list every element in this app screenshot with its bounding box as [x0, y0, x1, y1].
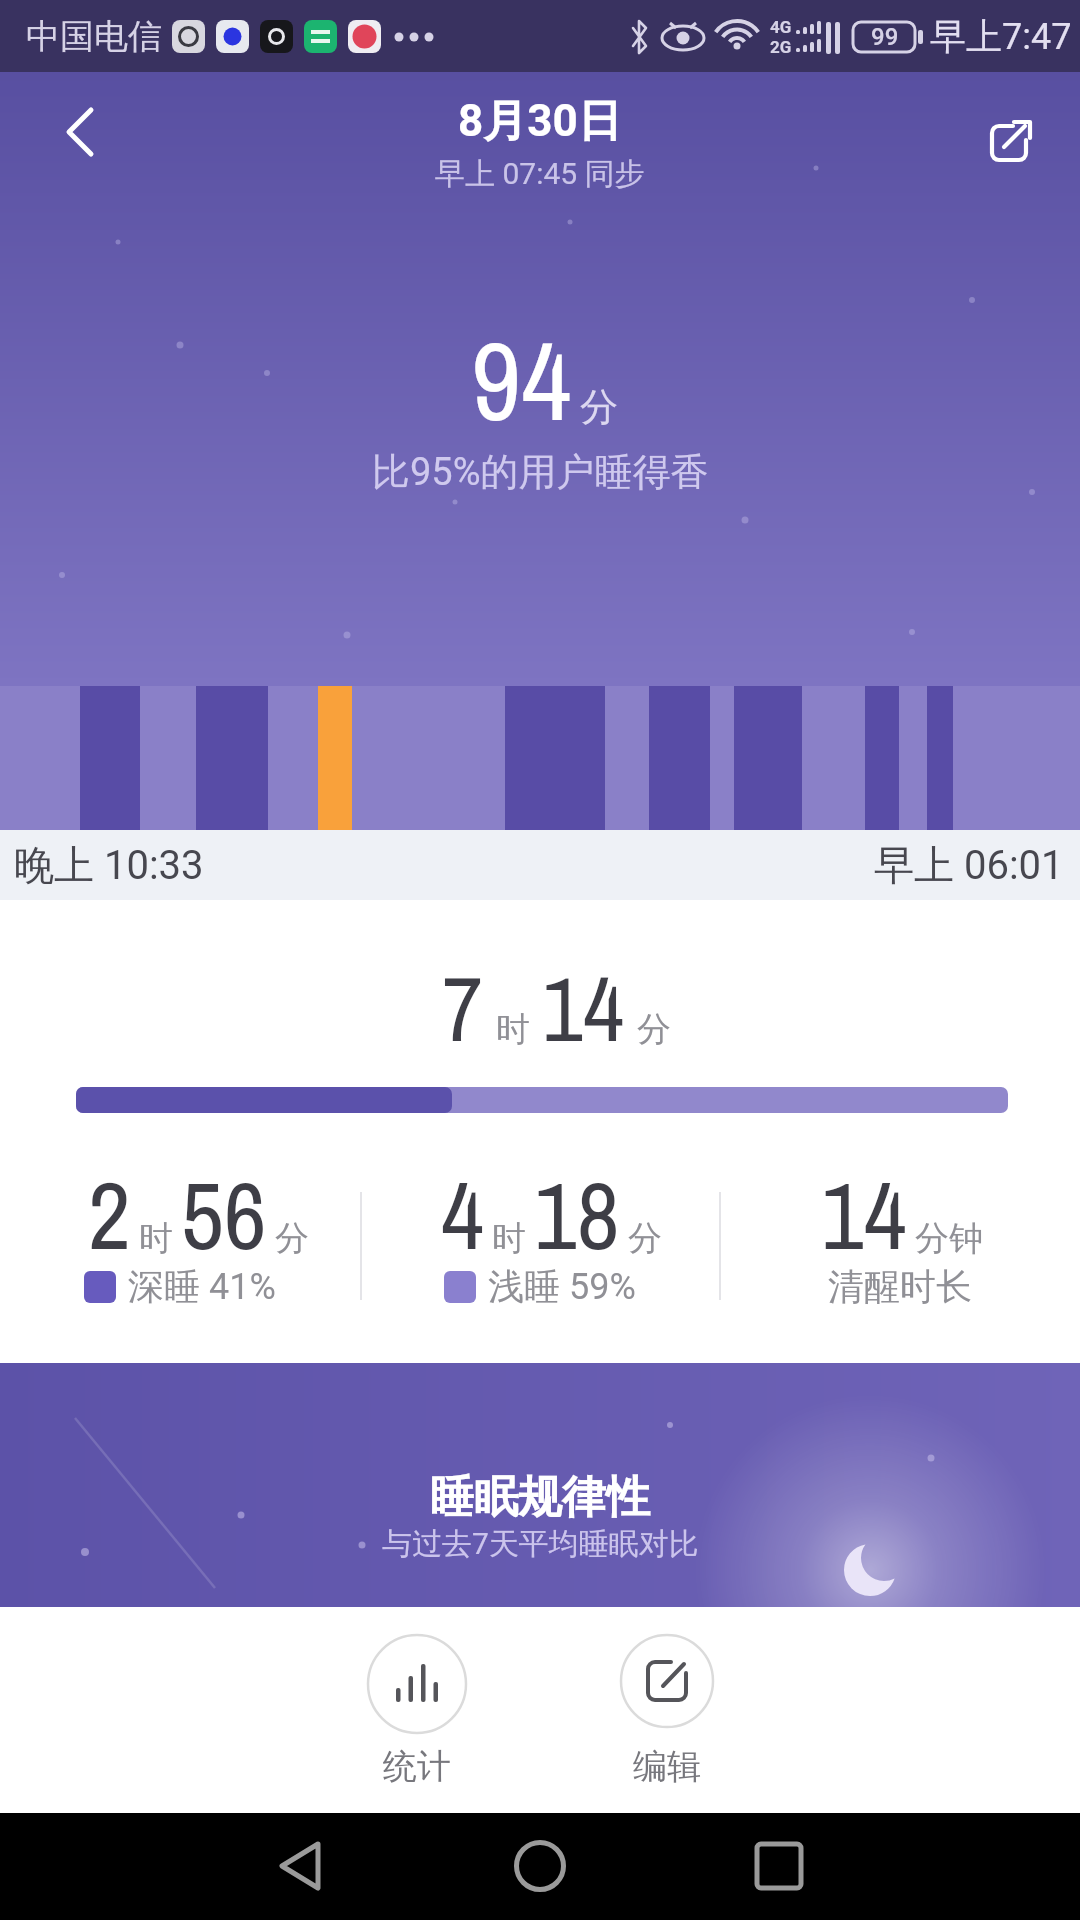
staticText: 8月30日	[458, 94, 622, 149]
staticText: 18	[534, 1152, 620, 1279]
staticText: 早上7:47	[930, 14, 1072, 59]
staticText: 94	[471, 306, 572, 454]
staticText: 分	[628, 1217, 662, 1260]
staticText: 2	[88, 1152, 131, 1279]
staticText: 4G	[770, 17, 792, 37]
button[interactable]	[966, 96, 1056, 186]
staticText: 时	[492, 1217, 526, 1260]
staticText: 深睡 41%	[128, 1264, 276, 1309]
staticText: 睡眠规律性	[430, 1470, 650, 1525]
staticText: 99	[871, 23, 899, 51]
staticText: 56	[181, 1152, 267, 1279]
button[interactable]	[490, 1816, 590, 1916]
staticText: 14	[542, 948, 625, 1069]
staticText: 与过去7天平均睡眠对比	[382, 1525, 699, 1563]
staticText: 时	[496, 1008, 530, 1051]
staticText: 4	[441, 1152, 484, 1279]
button[interactable]	[40, 92, 120, 172]
button[interactable]	[620, 1634, 714, 1728]
staticText: 分	[637, 1008, 671, 1051]
staticText: 编辑	[633, 1745, 701, 1788]
staticText: 比95%的用户睡得香	[372, 448, 709, 496]
staticText: 早上 07:45 同步	[435, 155, 645, 193]
staticText: 分	[275, 1217, 309, 1260]
staticText: 清醒时长	[828, 1264, 972, 1309]
button[interactable]	[729, 1816, 829, 1916]
staticText: 分钟	[915, 1217, 983, 1260]
staticText: 时	[139, 1217, 173, 1260]
staticText: 2G	[770, 37, 792, 57]
button[interactable]	[367, 1634, 467, 1734]
staticText: 14	[821, 1152, 907, 1279]
staticText: 晚上 10:33	[14, 840, 204, 890]
staticText: 统计	[383, 1745, 451, 1788]
staticText: 浅睡 59%	[488, 1264, 636, 1309]
staticText: 分	[580, 383, 618, 431]
button[interactable]: 睡眠规律性	[0, 1363, 1080, 1607]
staticText: 早上 06:01	[874, 840, 1064, 890]
button[interactable]	[250, 1816, 350, 1916]
staticText: 7	[442, 948, 484, 1069]
staticText: 中国电信	[26, 15, 162, 58]
